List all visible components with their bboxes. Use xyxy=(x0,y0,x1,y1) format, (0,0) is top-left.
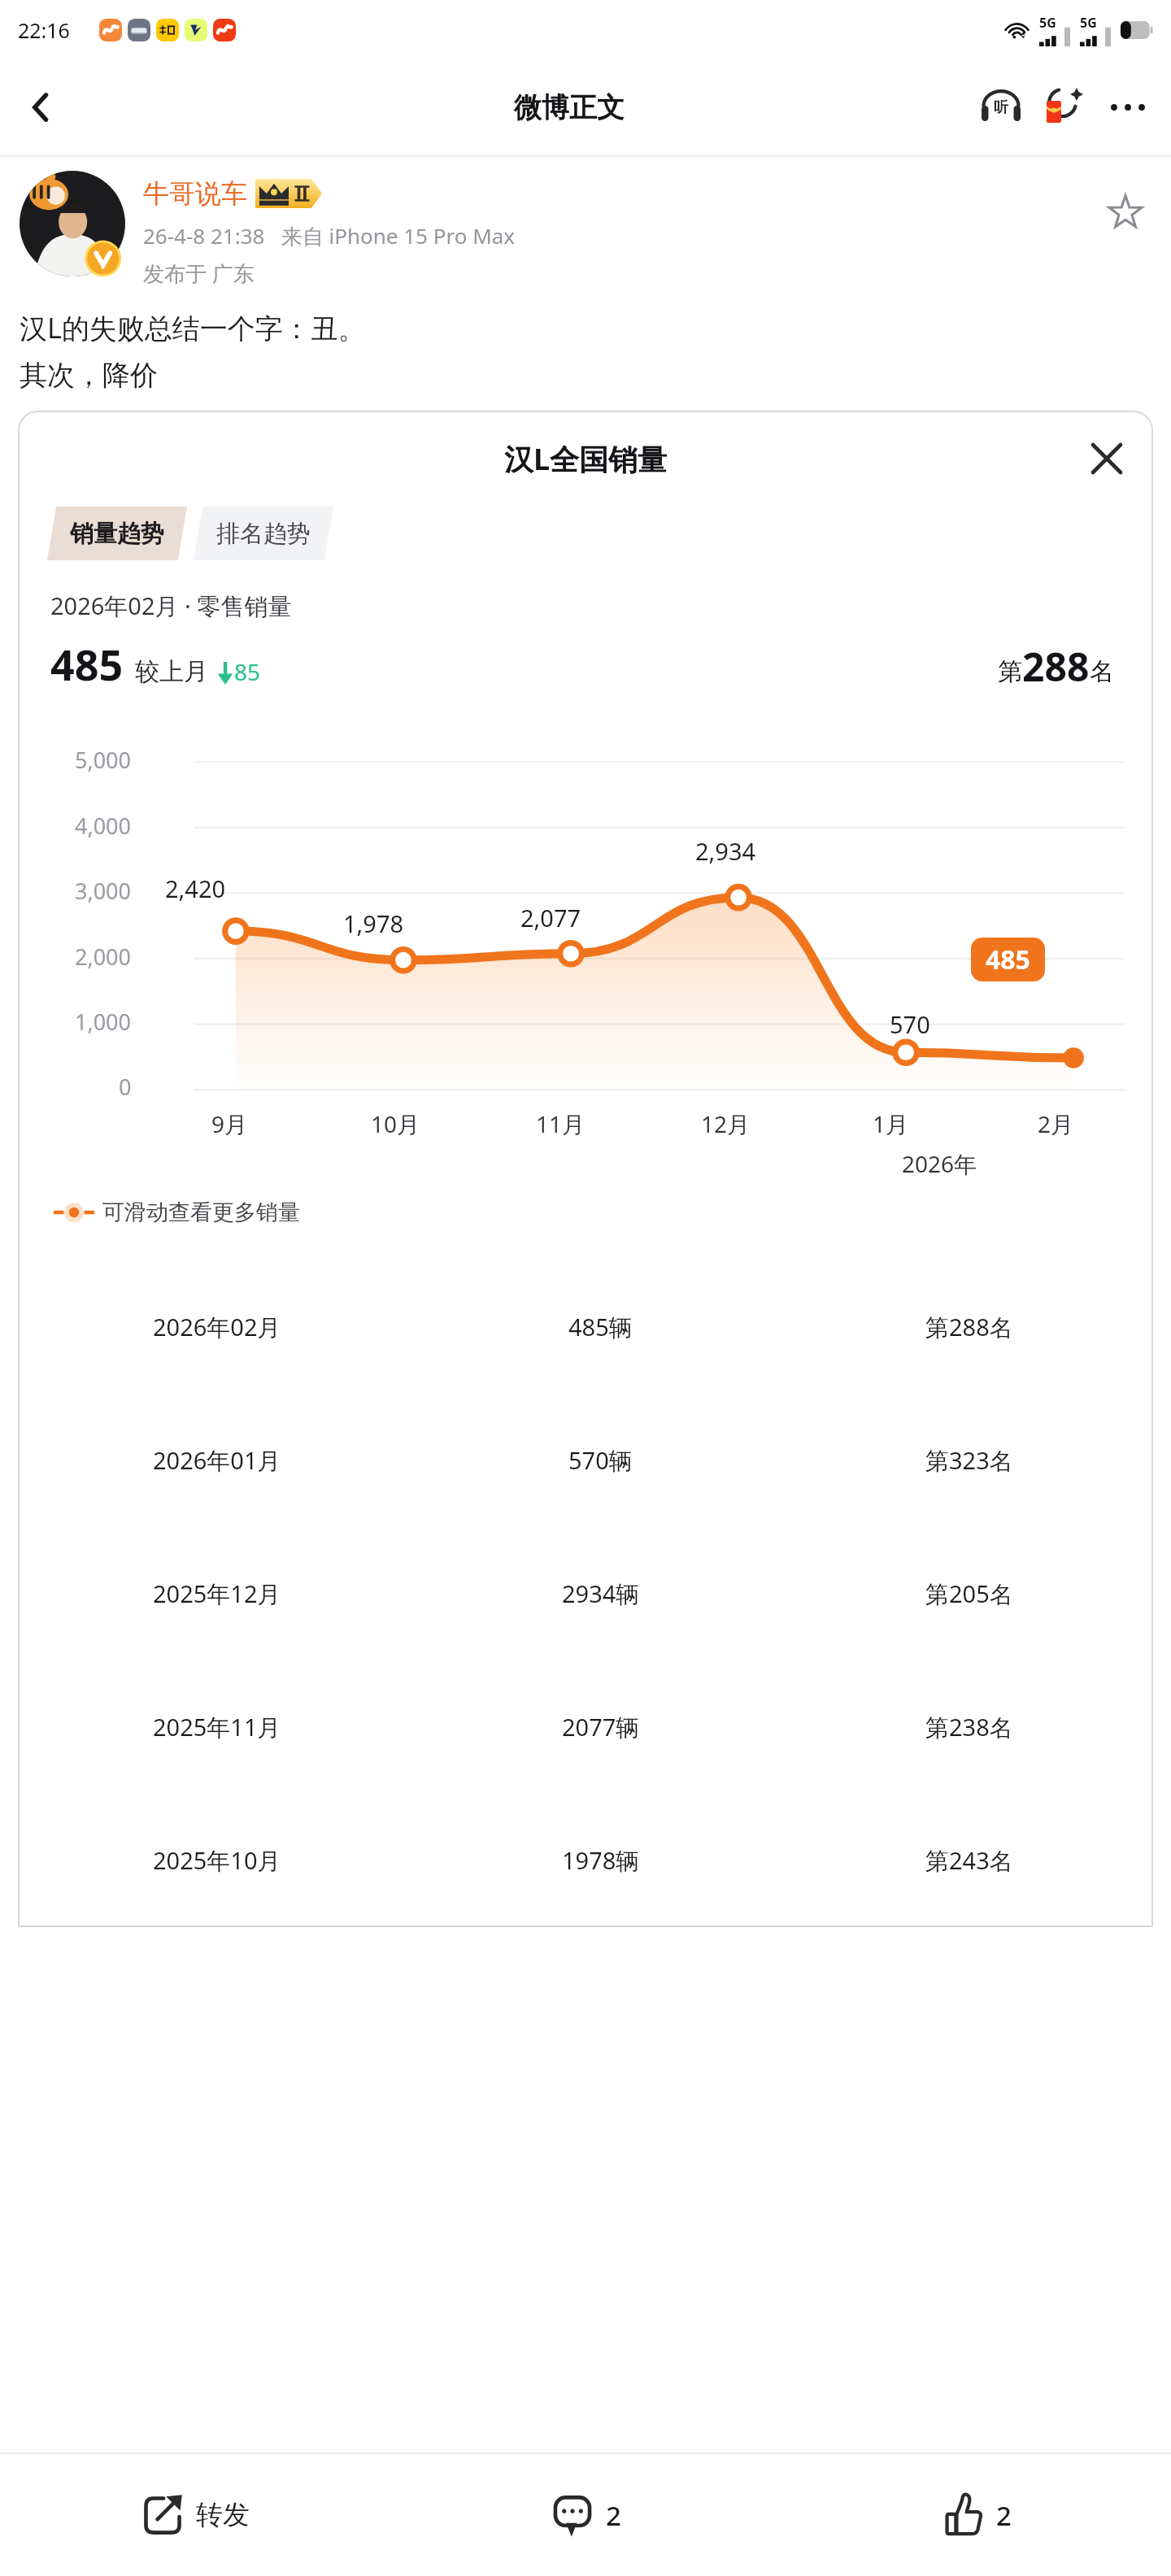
button[interactable]: 2026年02月 xyxy=(18,1260,1153,1394)
staticText: 第323名 xyxy=(925,1444,1013,1477)
staticText: 2,000 xyxy=(75,942,132,972)
staticText: 2934辆 xyxy=(562,1577,640,1610)
staticText: 570 xyxy=(890,1008,930,1040)
button[interactable]: 销量趋势 xyxy=(47,507,187,560)
staticText: 1,000 xyxy=(75,1007,132,1037)
button[interactable]: 汉L全国销量 xyxy=(18,411,1153,1927)
staticText: 5G xyxy=(1080,14,1097,32)
staticText: 2025年10月 xyxy=(153,1844,281,1877)
button[interactable]: Favorite xyxy=(1099,185,1151,237)
staticText: 4,000 xyxy=(75,811,132,841)
button[interactable]: Comment xyxy=(390,2454,781,2576)
button[interactable]: Repost xyxy=(0,2454,390,2576)
staticText: 2025年11月 xyxy=(153,1711,281,1743)
button[interactable]: 2026年01月 xyxy=(18,1394,1153,1527)
staticText: 2,077 xyxy=(520,902,581,933)
staticText: 2026年02月 xyxy=(153,1311,281,1343)
staticText: 1月 xyxy=(873,1108,909,1139)
staticText: 微博正文 xyxy=(514,90,625,125)
staticText: 5G xyxy=(1039,14,1056,32)
staticText: 其次，降价 xyxy=(20,358,158,393)
button[interactable]: Search xyxy=(1033,76,1096,139)
staticText: 汉L的失败总结一个字：丑。 xyxy=(20,309,366,346)
staticText: 第 xyxy=(998,656,1022,687)
button[interactable]: Close xyxy=(1080,432,1134,485)
staticText: 可滑动查看更多销量 xyxy=(102,1199,300,1226)
staticText: 12月 xyxy=(701,1108,751,1139)
staticText: 2026年02月 · 零售销量 xyxy=(50,590,292,622)
staticText: 转发 xyxy=(196,2498,250,2532)
staticText: 485辆 xyxy=(568,1311,633,1343)
staticText: 排名趋势 xyxy=(216,519,311,549)
button[interactable]: 2025年12月 xyxy=(18,1527,1153,1660)
staticText: 26-4-8 21:38 来自 iPhone 15 Pro Max xyxy=(143,221,516,250)
staticText: 2 xyxy=(996,2497,1012,2534)
staticText: 2 xyxy=(606,2497,621,2534)
staticText: 9月 xyxy=(211,1108,248,1139)
staticText: 2026年01月 xyxy=(153,1444,281,1477)
button[interactable]: 排名趋势 xyxy=(194,507,333,560)
staticText: 销量趋势 xyxy=(70,519,164,549)
staticText: 2,420 xyxy=(165,872,226,904)
staticText: 570辆 xyxy=(568,1444,633,1477)
staticText: 3,000 xyxy=(75,876,132,906)
staticText: 11月 xyxy=(536,1108,585,1139)
staticText: 0 xyxy=(119,1072,132,1102)
staticText: 发布于 广东 xyxy=(143,259,255,288)
staticText: 1978辆 xyxy=(562,1844,640,1877)
staticText: 485 xyxy=(986,942,1030,977)
staticText: 汉L全国销量 xyxy=(504,439,668,479)
staticText: 2025年12月 xyxy=(153,1577,281,1610)
staticText: 2077辆 xyxy=(562,1711,640,1743)
staticText: 288 xyxy=(1022,640,1090,693)
button[interactable]: More options xyxy=(1096,76,1160,139)
button[interactable]: 2025年11月 xyxy=(18,1660,1153,1794)
staticText: 5,000 xyxy=(75,745,132,775)
staticText: 第243名 xyxy=(925,1844,1013,1877)
staticText: 22:16 xyxy=(18,16,70,44)
staticText: 2026年 xyxy=(902,1148,977,1179)
staticText: 第205名 xyxy=(925,1577,1013,1610)
button[interactable]: Listen xyxy=(969,76,1033,139)
button[interactable]: 2025年10月 xyxy=(18,1794,1153,1927)
button[interactable]: Like xyxy=(781,2454,1171,2576)
staticText: 听 xyxy=(994,98,1008,117)
button[interactable]: 牛哥说车 xyxy=(143,177,247,210)
button[interactable]: Back xyxy=(10,76,72,138)
staticText: 1,978 xyxy=(343,907,404,939)
staticText: 85 xyxy=(234,656,261,687)
staticText: 10月 xyxy=(371,1108,420,1139)
staticText: 较上月 xyxy=(135,656,208,687)
staticText: 名 xyxy=(1090,656,1114,687)
staticText: 第288名 xyxy=(925,1311,1013,1343)
staticText: 485 xyxy=(50,635,124,693)
staticText: 第238名 xyxy=(925,1711,1013,1743)
button[interactable] xyxy=(20,171,125,276)
staticText: 2,934 xyxy=(695,835,756,867)
staticText: 2月 xyxy=(1038,1108,1074,1139)
